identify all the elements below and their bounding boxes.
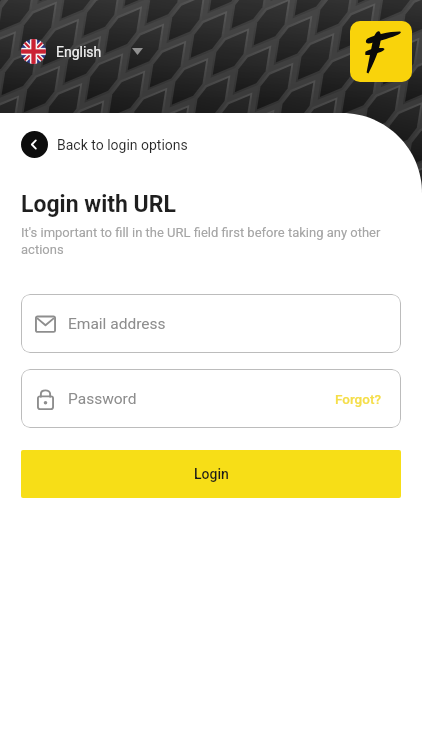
staticText: Back to login options (57, 137, 188, 153)
button[interactable]: English (21, 39, 143, 64)
button[interactable]: Password (21, 369, 401, 428)
button[interactable]: App logo (350, 21, 412, 82)
button[interactable]: Forgot? (335, 391, 381, 407)
staticText: English (56, 44, 102, 60)
staticText: Login with URL (21, 191, 176, 218)
button[interactable]: Login (21, 450, 401, 498)
button[interactable]: Back to login options (21, 131, 188, 158)
staticText: It's important to fill in the URL field … (21, 225, 401, 258)
staticText: Login (194, 466, 229, 482)
button[interactable]: Email address (21, 294, 401, 353)
staticText: Email address (68, 315, 166, 333)
staticText: Password (68, 390, 137, 408)
